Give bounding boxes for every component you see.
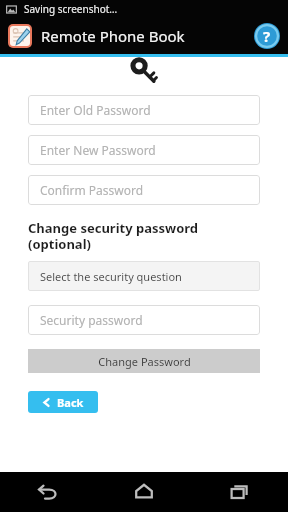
staticText: Back — [57, 395, 84, 410]
button[interactable]: Security password — [28, 305, 260, 335]
staticText: Change Password — [98, 354, 191, 369]
button[interactable]: Select the security question — [28, 261, 260, 291]
button[interactable]: Change Password — [28, 349, 260, 373]
button[interactable]: Home — [96, 472, 192, 512]
staticText: Enter Old Password — [40, 102, 151, 118]
staticText: Change security password (optional) — [28, 219, 199, 252]
button[interactable]: Back — [0, 472, 96, 512]
staticText: Security password — [40, 312, 143, 328]
button[interactable]: Help — [254, 23, 280, 49]
button[interactable]: Enter Old Password — [28, 95, 260, 125]
button[interactable]: Confirm Password — [28, 175, 260, 205]
staticText: Remote Phone Book — [41, 26, 185, 46]
staticText: Confirm Password — [40, 182, 144, 198]
button[interactable]: Enter New Password — [28, 135, 260, 165]
staticText: Saving screenshot… — [24, 2, 118, 16]
staticText: Select the security question — [40, 269, 182, 284]
button[interactable]: Back — [28, 391, 98, 413]
button[interactable]: Recents — [192, 472, 288, 512]
staticText: ? — [263, 26, 271, 46]
staticText: Enter New Password — [40, 142, 156, 158]
